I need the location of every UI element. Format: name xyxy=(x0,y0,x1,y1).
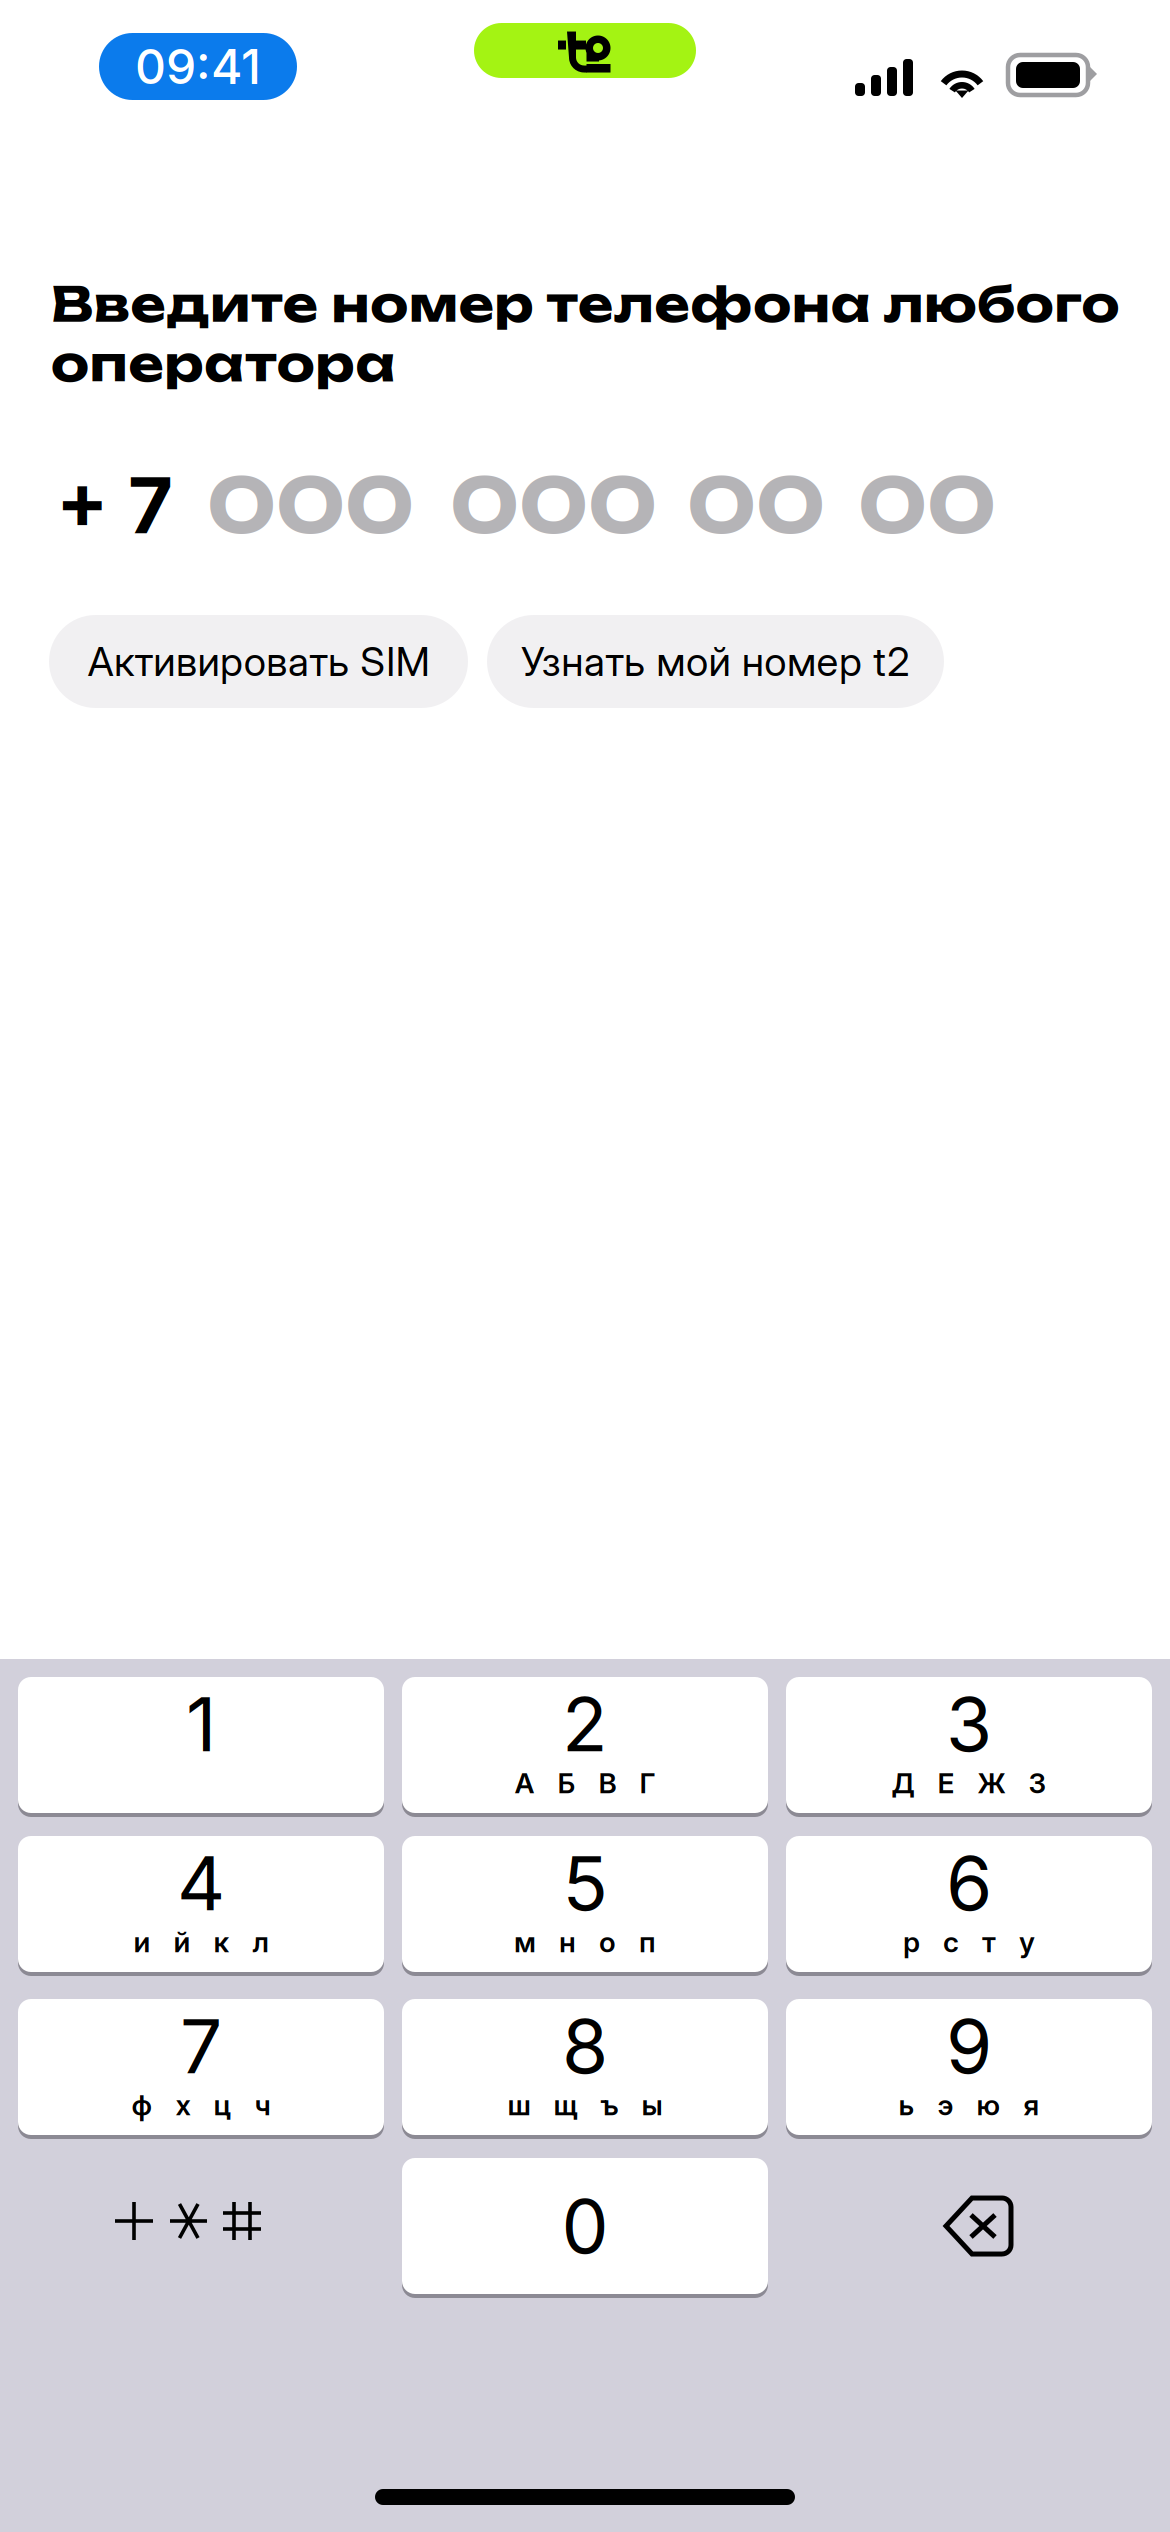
button[interactable]: 6 xyxy=(786,1836,1152,1976)
staticText: 5 xyxy=(562,1838,607,1928)
staticText: Введите номер телефона любого оператора xyxy=(51,274,1119,393)
staticText: +7 xyxy=(56,458,173,552)
button[interactable]: 0 xyxy=(402,2158,768,2298)
button[interactable]: Plus, star and hash xyxy=(18,2158,384,2294)
staticText: 09:41 xyxy=(135,37,261,96)
staticText: 4 xyxy=(177,1838,225,1928)
staticText: А Б В Г xyxy=(514,1766,655,1800)
button[interactable]: 3 xyxy=(786,1677,1152,1817)
staticText: 00 xyxy=(858,459,996,551)
button[interactable]: 8 xyxy=(402,1999,768,2139)
staticText: Активировать SIM xyxy=(87,637,429,686)
staticText: ф х ц ч xyxy=(131,2088,270,2122)
button[interactable]: Узнать мой номер t2 xyxy=(487,615,944,708)
staticText: 6 xyxy=(946,1838,992,1928)
staticText: и й к л xyxy=(133,1925,268,1959)
staticText: 000 xyxy=(207,459,414,551)
button[interactable]: 4 xyxy=(18,1836,384,1976)
staticText: р с т у xyxy=(903,1925,1035,1959)
button[interactable]: 5 xyxy=(402,1836,768,1976)
staticText: 1 xyxy=(186,1679,216,1769)
staticText: 000 xyxy=(450,459,657,551)
staticText: 00 xyxy=(687,459,825,551)
button[interactable]: Delete xyxy=(786,2158,1152,2294)
button[interactable]: Активировать SIM xyxy=(49,615,468,708)
button[interactable]: 2 xyxy=(402,1677,768,1817)
staticText: 8 xyxy=(562,2001,608,2091)
staticText: 9 xyxy=(946,2001,992,2091)
staticText: Д Е Ж З xyxy=(891,1766,1046,1800)
staticText: ш щ ъ ы xyxy=(507,2088,662,2122)
staticText: ь э ю я xyxy=(898,2088,1039,2122)
button[interactable]: 7 xyxy=(18,1999,384,2139)
button[interactable]: 9 xyxy=(786,1999,1152,2139)
staticText: 2 xyxy=(562,1679,608,1769)
staticText: 7 xyxy=(180,2001,222,2091)
staticText: 3 xyxy=(946,1679,992,1769)
staticText: м н о п xyxy=(514,1925,656,1959)
staticText: Узнать мой номер t2 xyxy=(521,637,910,686)
staticText: 0 xyxy=(561,2181,608,2271)
button[interactable]: 1 xyxy=(18,1677,384,1817)
